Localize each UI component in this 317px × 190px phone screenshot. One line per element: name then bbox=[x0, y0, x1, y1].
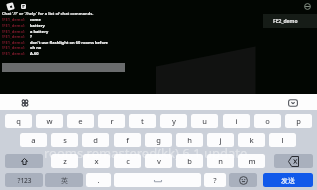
button[interactable]: Collapse chat bbox=[304, 3, 311, 10]
button[interactable]: s bbox=[51, 133, 78, 147]
button[interactable]: d bbox=[82, 133, 109, 147]
staticText: d bbox=[93, 135, 98, 145]
button[interactable]: q bbox=[5, 114, 32, 128]
staticText: m bbox=[248, 156, 256, 166]
button[interactable]: m bbox=[238, 154, 265, 168]
staticText: [FE1_demo]: bbox=[2, 34, 30, 39]
staticText: b bbox=[187, 156, 192, 166]
button[interactable]: Keyboard layouts bbox=[20, 98, 30, 108]
staticText: v bbox=[157, 156, 161, 166]
staticText: l bbox=[281, 135, 284, 145]
button[interactable]: r bbox=[98, 114, 125, 128]
staticText: c bbox=[126, 156, 130, 166]
button[interactable]: w bbox=[36, 114, 63, 128]
staticText: [FE1_demo]: bbox=[2, 29, 30, 34]
staticText: q bbox=[16, 116, 21, 126]
staticText: ? bbox=[213, 175, 217, 185]
staticText: rooms remastered(kk) 6.1 update bbox=[44, 144, 248, 162]
button[interactable]: e bbox=[67, 114, 94, 128]
staticText: ? bbox=[30, 34, 32, 39]
staticText: n bbox=[218, 156, 223, 166]
staticText: come bbox=[30, 17, 41, 22]
button[interactable]: y bbox=[160, 114, 187, 128]
button[interactable]: p bbox=[285, 114, 312, 128]
staticText: a bbox=[31, 135, 36, 145]
staticText: [FE1_demo]: bbox=[2, 17, 30, 22]
staticText: [FE1_demo]: bbox=[2, 40, 30, 45]
staticText: p bbox=[296, 116, 301, 126]
staticText: A-60 bbox=[30, 51, 39, 56]
staticText: 发送 bbox=[281, 176, 295, 185]
button[interactable]: x bbox=[83, 154, 110, 168]
staticText: y bbox=[172, 116, 176, 126]
staticText: . bbox=[97, 175, 100, 185]
button[interactable]: b bbox=[176, 154, 203, 168]
button[interactable]: h bbox=[176, 133, 203, 147]
staticText: a battery bbox=[30, 29, 49, 34]
staticText: f bbox=[126, 135, 129, 145]
button[interactable]: t bbox=[129, 114, 156, 128]
button[interactable]: Emoji bbox=[229, 173, 257, 187]
button[interactable]: 发送 bbox=[263, 173, 313, 187]
staticText: [FE1_demo]: bbox=[2, 51, 30, 56]
button[interactable]: ? bbox=[204, 173, 226, 187]
button[interactable]: j bbox=[207, 133, 234, 147]
staticText: battery bbox=[30, 23, 45, 28]
button[interactable]: . bbox=[86, 173, 111, 187]
button[interactable]: 英 bbox=[45, 173, 83, 187]
staticText: g bbox=[156, 135, 161, 145]
button[interactable]: n bbox=[207, 154, 234, 168]
button[interactable]: Hide keyboard bbox=[288, 99, 298, 107]
button[interactable]: Shift bbox=[5, 154, 43, 168]
button[interactable]: z bbox=[51, 154, 78, 168]
staticText: s bbox=[63, 135, 67, 145]
staticText: i bbox=[235, 116, 238, 126]
button[interactable]: Space bbox=[114, 173, 201, 187]
button[interactable]: Backspace bbox=[274, 154, 313, 168]
staticText: oh no bbox=[30, 45, 42, 50]
button[interactable]: v bbox=[145, 154, 172, 168]
staticText: u bbox=[202, 116, 207, 126]
button[interactable]: g bbox=[145, 133, 172, 147]
staticText: r bbox=[110, 116, 114, 126]
staticText: [FE1_demo]: bbox=[2, 45, 30, 50]
button[interactable]: a bbox=[20, 133, 47, 147]
staticText: 英 bbox=[61, 176, 68, 185]
button[interactable]: i bbox=[223, 114, 250, 128]
staticText: z bbox=[63, 156, 67, 166]
staticText: j bbox=[219, 135, 222, 145]
staticText: t bbox=[141, 116, 144, 126]
staticText: h bbox=[187, 135, 192, 145]
button[interactable]: u bbox=[191, 114, 218, 128]
staticText: FE2_demo bbox=[273, 18, 298, 25]
button[interactable]: l bbox=[269, 133, 296, 147]
staticText: w bbox=[46, 116, 53, 126]
button[interactable]: o bbox=[254, 114, 281, 128]
staticText: k bbox=[249, 135, 254, 145]
staticText: ?123 bbox=[17, 176, 32, 185]
button[interactable]: f bbox=[114, 133, 141, 147]
staticText: Chat '/?' or '/help' for a list of chat … bbox=[2, 11, 94, 16]
button[interactable]: ?123 bbox=[5, 173, 43, 187]
staticText: [FE1_demo]: bbox=[2, 23, 30, 28]
staticText: don't use flashlight on 60 rooms before bbox=[30, 40, 108, 45]
staticText: x bbox=[94, 156, 99, 166]
staticText: e bbox=[78, 116, 83, 126]
button[interactable]: k bbox=[238, 133, 265, 147]
staticText: o bbox=[265, 116, 270, 126]
button[interactable]: c bbox=[114, 154, 141, 168]
